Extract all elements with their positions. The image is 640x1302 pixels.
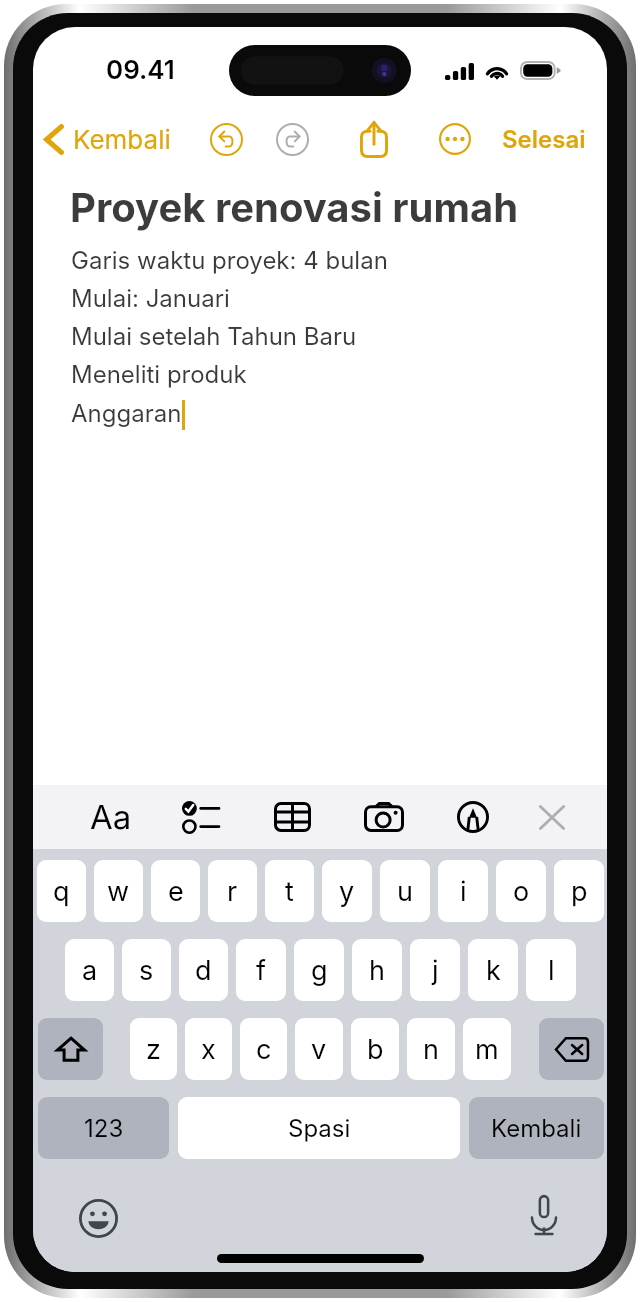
button[interactable]: i (438, 860, 488, 922)
button[interactable]: Close (529, 794, 575, 840)
staticText: t (285, 875, 294, 908)
button[interactable]: More (436, 120, 474, 158)
staticText: Mulai setelah Tahun Baru (71, 322, 357, 351)
staticText: g (311, 954, 328, 987)
button[interactable]: Selesai (492, 120, 596, 159)
staticText: f (256, 954, 266, 987)
button[interactable]: j (410, 939, 460, 1001)
staticText: Proyek renovasi rumah (70, 183, 519, 231)
staticText: Aa (90, 797, 132, 837)
button[interactable]: k (468, 939, 518, 1001)
button[interactable]: o (496, 860, 546, 922)
button[interactable]: Kembali (39, 119, 179, 160)
button[interactable]: 123 (38, 1097, 169, 1159)
button[interactable]: f (236, 939, 286, 1001)
button[interactable]: Checklist (177, 794, 223, 840)
button[interactable]: Markup (450, 794, 496, 840)
staticText: Anggaran (71, 399, 182, 428)
button[interactable]: m (463, 1018, 511, 1080)
button[interactable]: v (295, 1018, 343, 1080)
staticText: s (139, 954, 154, 987)
staticText: b (367, 1033, 384, 1066)
button[interactable]: Shift (38, 1018, 103, 1080)
staticText: v (311, 1033, 327, 1066)
button[interactable]: w (94, 860, 143, 922)
button[interactable]: h (352, 939, 402, 1001)
staticText: z (146, 1033, 161, 1066)
button[interactable]: d (179, 939, 228, 1001)
button[interactable]: p (554, 860, 604, 922)
staticText: y (339, 875, 355, 908)
staticText: u (397, 875, 413, 908)
button[interactable]: c (240, 1018, 287, 1080)
button[interactable]: Format (88, 794, 134, 840)
button[interactable]: Table (269, 794, 315, 840)
button[interactable]: Share (353, 118, 395, 160)
button[interactable]: z (130, 1018, 177, 1080)
button[interactable]: q (37, 860, 86, 922)
button[interactable]: Kembali (469, 1097, 604, 1159)
staticText: l (548, 954, 555, 987)
staticText: Garis waktu proyek: 4 bulan (71, 246, 388, 275)
button[interactable]: u (380, 860, 430, 922)
staticText: Kembali (73, 124, 171, 155)
staticText: h (369, 954, 385, 987)
button[interactable]: Redo (273, 120, 311, 158)
staticText: e (168, 875, 184, 908)
staticText: r (227, 875, 238, 908)
button[interactable]: Emoji (75, 1195, 121, 1241)
staticText: Selesai (502, 125, 586, 154)
staticText: j (432, 954, 439, 987)
button[interactable]: x (185, 1018, 232, 1080)
staticText: p (571, 875, 588, 908)
button[interactable]: a (65, 939, 114, 1001)
button[interactable]: b (351, 1018, 399, 1080)
button[interactable]: y (322, 860, 372, 922)
staticText: i (460, 875, 467, 908)
button[interactable]: Backspace (539, 1018, 604, 1080)
staticText: m (475, 1033, 499, 1066)
button[interactable]: Dictate (521, 1192, 567, 1238)
staticText: Kembali (491, 1114, 582, 1143)
button[interactable]: Camera (361, 794, 407, 840)
staticText: k (486, 954, 501, 987)
staticText: o (513, 875, 530, 908)
button[interactable]: Undo (207, 120, 245, 158)
staticText: n (423, 1033, 439, 1066)
staticText: w (107, 875, 130, 908)
staticText: c (256, 1033, 272, 1066)
button[interactable]: g (294, 939, 344, 1001)
button[interactable]: e (151, 860, 200, 922)
staticText: 09.41 (106, 54, 175, 85)
button[interactable]: t (265, 860, 314, 922)
staticText: Mulai: Januari (71, 284, 230, 313)
staticText: d (195, 954, 212, 987)
staticText: Spasi (288, 1114, 351, 1143)
staticText: q (53, 875, 70, 908)
staticText: Meneliti produk (71, 360, 247, 389)
button[interactable]: l (526, 939, 576, 1001)
staticText: x (201, 1033, 216, 1066)
button[interactable]: s (122, 939, 171, 1001)
button[interactable]: Spasi (178, 1097, 460, 1159)
staticText: 123 (84, 1114, 124, 1143)
button[interactable]: n (407, 1018, 455, 1080)
button[interactable]: r (208, 860, 257, 922)
staticText: a (82, 954, 98, 987)
